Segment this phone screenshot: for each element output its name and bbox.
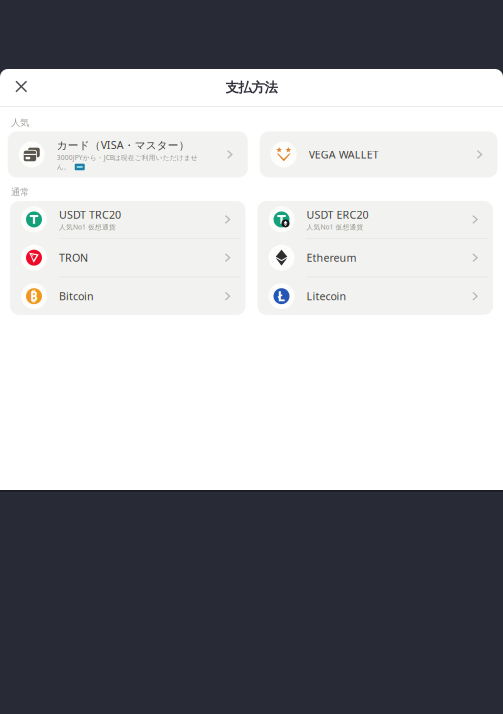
staticText: USDT TRC20 xyxy=(59,207,121,222)
button[interactable]: Ethereum xyxy=(257,239,493,276)
staticText: 人気No1 仮想通貨 xyxy=(59,223,116,231)
staticText: カード（VISA・マスター） xyxy=(57,138,190,152)
staticText: Ethereum xyxy=(306,251,356,265)
staticText: 支払方法 xyxy=(225,79,277,96)
staticText: ₿ xyxy=(30,287,38,305)
staticText: Litecoin xyxy=(306,289,346,303)
button[interactable]: USDT TRC20 xyxy=(10,201,245,238)
button[interactable]: VEGA WALLET xyxy=(260,131,498,177)
staticText: Bitcoin xyxy=(59,289,94,303)
staticText: 通常 xyxy=(11,186,29,198)
button[interactable]: カード（VISA・マスター） xyxy=(8,131,248,177)
button[interactable]: TRON xyxy=(10,239,245,276)
staticText: ん。 xyxy=(57,163,71,171)
button[interactable]: ₿ xyxy=(10,277,245,315)
staticText: USDT ERC20 xyxy=(306,207,368,222)
staticText: Ł xyxy=(277,287,285,305)
button[interactable]: USDT ERC20 xyxy=(257,201,493,238)
button[interactable]: Ł xyxy=(257,277,493,315)
staticText: TRON xyxy=(59,251,88,265)
staticText: 人気No1 仮想通貨 xyxy=(306,223,363,231)
staticText: VEGA WALLET xyxy=(309,147,379,162)
button[interactable]: Close xyxy=(0,69,40,106)
staticText: 人気 xyxy=(11,117,29,128)
staticText: 3000JPYから・JCBは現在ご利用いただけませ xyxy=(57,153,198,162)
